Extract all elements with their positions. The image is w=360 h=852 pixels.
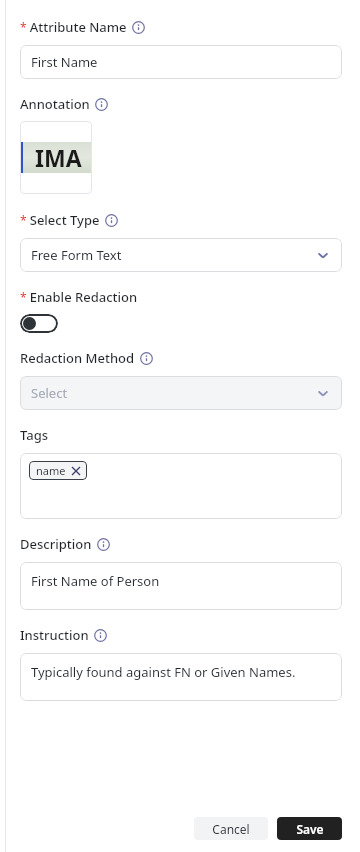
button[interactable]: Enable Redaction toggle, off: [20, 314, 58, 333]
other: More information: [97, 538, 110, 551]
staticText: Instruction: [20, 626, 89, 644]
staticText: * Select Type: [20, 211, 100, 229]
button[interactable]: name: [29, 461, 87, 480]
staticText: Description: [20, 535, 92, 553]
staticText: Tags: [20, 426, 49, 444]
other: Remove tag name: [72, 467, 80, 475]
other: More information: [94, 629, 107, 642]
staticText: First Name of Person: [31, 572, 160, 590]
staticText: Redaction Method: [20, 349, 135, 367]
button[interactable]: Annotation image: [20, 121, 92, 194]
button[interactable]: Typically found against FN or Given Name…: [20, 653, 342, 701]
staticText: Typically found against FN or Given Name…: [31, 663, 296, 681]
button[interactable]: Save: [277, 817, 342, 840]
staticText: * Enable Redaction: [20, 288, 138, 306]
staticText: name: [36, 463, 66, 478]
staticText: Free Form Text: [31, 246, 315, 264]
staticText: First Name: [31, 53, 331, 71]
button[interactable]: Cancel: [194, 817, 268, 840]
other: More information: [95, 98, 108, 111]
other: More information: [140, 352, 153, 365]
button[interactable]: Free Form Text: [20, 238, 342, 272]
button[interactable]: Select: [20, 376, 342, 410]
button[interactable]: First Name: [20, 45, 342, 79]
staticText: Save: [296, 821, 324, 837]
button[interactable]: First Name of Person: [20, 562, 342, 610]
staticText: * Attribute Name: [20, 18, 127, 36]
staticText: Cancel: [212, 821, 250, 837]
button[interactable]: name: [20, 453, 342, 519]
staticText: IMA: [35, 142, 82, 173]
staticText: Annotation: [20, 95, 90, 113]
staticText: Select: [31, 384, 315, 402]
other: More information: [132, 21, 145, 34]
other: More information: [105, 214, 118, 227]
